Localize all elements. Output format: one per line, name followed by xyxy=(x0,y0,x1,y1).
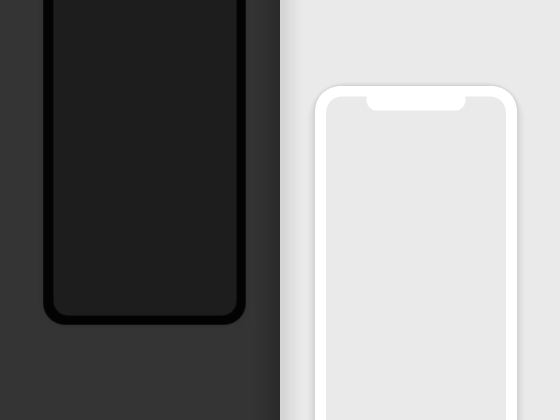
button[interactable]: Dark theme preview xyxy=(44,0,245,324)
button[interactable]: Light theme preview xyxy=(315,86,517,420)
